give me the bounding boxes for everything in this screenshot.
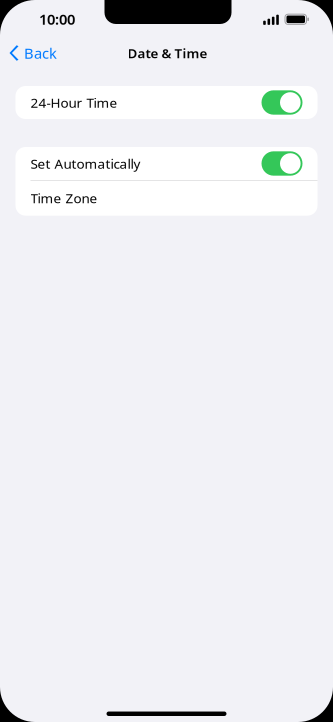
staticText: Back (24, 43, 57, 63)
staticText: Set Automatically (30, 154, 140, 173)
staticText: Date & Time (127, 44, 207, 62)
button[interactable]: Back (0, 38, 66, 68)
staticText: Time Zone (30, 189, 97, 207)
staticText: 24-Hour Time (30, 93, 117, 112)
button[interactable]: 24-Hour Time (15, 86, 317, 119)
button[interactable]: Time Zone (15, 181, 317, 216)
staticText: 10:00 (39, 9, 75, 29)
button[interactable]: Set Automatically (15, 147, 317, 180)
